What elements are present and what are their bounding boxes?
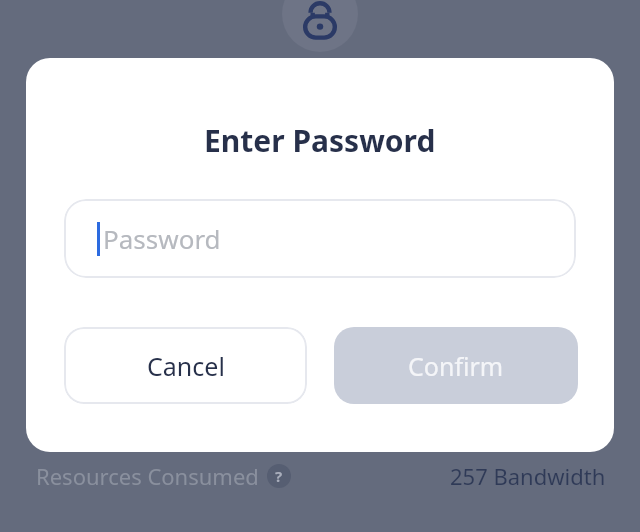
staticText: Password <box>103 221 221 256</box>
button[interactable]: Resources Consumed <box>34 461 293 491</box>
button[interactable]: Cancel <box>64 327 307 404</box>
staticText: ? <box>275 466 283 486</box>
staticText: Enter Password <box>204 120 436 161</box>
staticText: Cancel <box>147 349 225 383</box>
staticText: 257 Bandwidth <box>450 461 606 491</box>
button[interactable]: Password <box>64 199 576 278</box>
staticText: Confirm <box>408 349 504 383</box>
other: Locked <box>282 0 358 52</box>
other: Help <box>267 464 291 488</box>
staticText: Resources Consumed <box>36 461 259 491</box>
button[interactable]: Confirm <box>334 327 578 404</box>
